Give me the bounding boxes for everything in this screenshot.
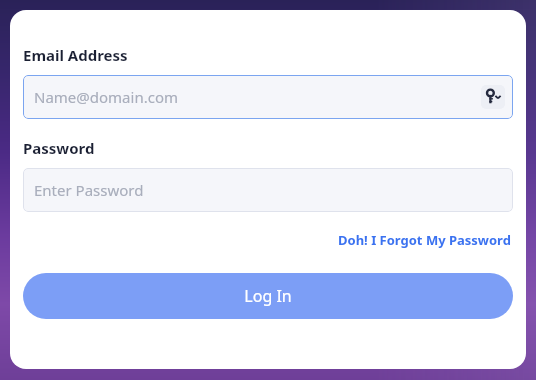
staticText: Enter Password [34,180,144,200]
button[interactable]: Doh! I Forgot My Password [336,229,513,251]
staticText: Name@domain.com [34,87,178,107]
button[interactable]: Enter Password [23,168,513,212]
button[interactable]: Log In [23,273,513,319]
button[interactable]: Name@domain.com [23,75,513,119]
staticText: Log In [244,285,292,307]
staticText: Password [23,138,95,158]
button[interactable]: Use saved password [481,85,505,109]
staticText: Doh! I Forgot My Password [338,231,511,249]
staticText: Email Address [23,45,128,65]
